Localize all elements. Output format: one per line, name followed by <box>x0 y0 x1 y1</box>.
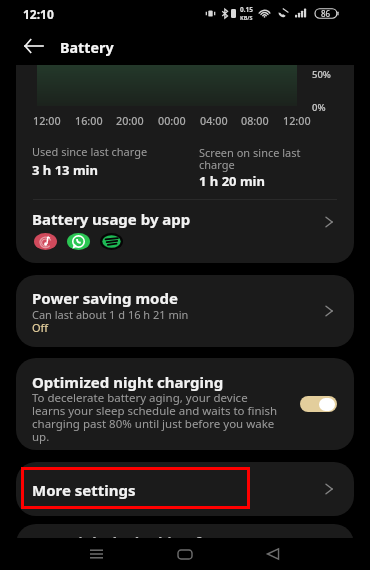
button[interactable]: Optimized night charging toggle <box>300 396 337 412</box>
staticText: Power saving mode <box>32 288 178 308</box>
staticText: 3 h 13 min <box>32 161 98 179</box>
staticText: Used since last charge <box>32 144 148 159</box>
staticText: 0.15 <box>240 5 253 14</box>
staticText: 1 h 20 min <box>199 172 265 190</box>
button[interactable]: Power saving mode <box>16 275 354 347</box>
button[interactable]: Back <box>255 538 291 570</box>
staticText: 50% <box>312 68 331 81</box>
staticText: Battery <box>60 38 114 57</box>
staticText: 20:00 <box>116 113 144 128</box>
staticText: Battery usage by app <box>32 209 191 229</box>
staticText: 12:00 <box>283 113 311 128</box>
staticText: 86 <box>321 8 331 19</box>
button[interactable]: Back <box>13 33 53 59</box>
button[interactable]: Battery usage by app <box>16 198 354 263</box>
staticText: 16:00 <box>75 113 103 128</box>
staticText: Off <box>32 320 49 335</box>
staticText: KB/S <box>240 14 253 21</box>
staticText: 00:00 <box>158 113 186 128</box>
staticText: You might be looking for <box>32 532 217 552</box>
staticText: To decelerate battery aging, your device… <box>32 390 282 444</box>
staticText: Optimized night charging <box>32 372 224 392</box>
staticText: Screen on since last charge <box>199 145 331 172</box>
staticText: More settings <box>32 480 136 500</box>
button[interactable]: Recent apps <box>78 538 114 570</box>
button[interactable]: Home <box>167 538 203 570</box>
staticText: Can last about 1 d 16 h 21 min <box>32 307 189 322</box>
staticText: 08:00 <box>241 113 269 128</box>
staticText: 12:10 <box>23 6 54 22</box>
staticText: 12:00 <box>33 113 61 128</box>
button[interactable]: More settings <box>16 462 354 516</box>
staticText: 04:00 <box>200 113 228 128</box>
staticText: 0% <box>312 101 326 114</box>
